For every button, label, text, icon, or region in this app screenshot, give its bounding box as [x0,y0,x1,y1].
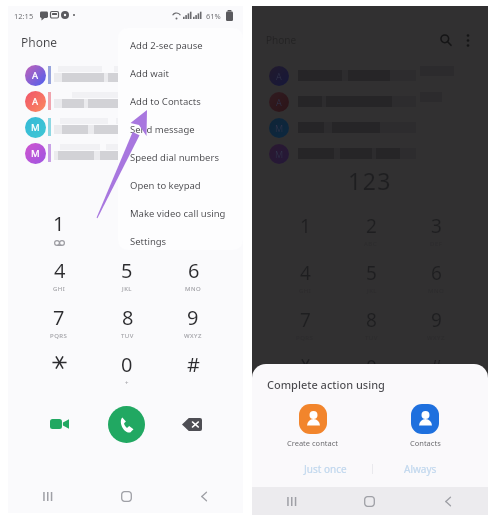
staticText: 9 [187,304,199,331]
button[interactable]: 3 [163,210,223,256]
button[interactable]: Always [374,457,466,481]
staticText: Contacts [410,438,441,448]
staticText: 0 [366,354,377,380]
staticText: + [370,381,374,389]
button[interactable]: 5 [97,257,157,303]
button[interactable]: Send message [118,115,243,143]
button[interactable]: 1 [29,210,89,256]
staticText: 6 [431,260,442,286]
staticText: WXYZ [184,332,202,340]
button[interactable]: Just once [277,457,373,481]
button[interactable]: Recents [252,487,330,515]
button[interactable] [275,354,335,400]
staticText: Complete action using [267,377,385,392]
staticText: 3 [431,213,442,239]
staticText: A [32,95,39,108]
staticText: + [125,379,129,387]
button[interactable]: Search [436,30,456,50]
staticText: TUV [121,332,134,340]
button[interactable]: 7 [29,304,89,350]
button[interactable]: M [252,116,488,142]
button[interactable]: 9 [163,304,223,350]
button[interactable]: Speed dial numbers [118,143,243,171]
staticText: 7 [300,307,311,333]
staticText: A [276,70,282,82]
button[interactable]: M [8,142,243,168]
button[interactable]: 8 [97,304,157,350]
button[interactable]: Add to Contacts [118,87,243,115]
staticText: 4 [300,260,311,286]
button[interactable]: 4 [29,257,89,303]
button[interactable]: Add 2-sec pause [118,31,243,59]
button[interactable]: 2 [97,210,157,256]
staticText: A [276,96,282,108]
staticText: Phone [266,33,297,47]
staticText: 61% [206,11,221,21]
staticText: 0 [121,351,133,378]
button[interactable]: Open to keypad [118,171,243,199]
button[interactable]: Create contact [265,404,361,448]
button[interactable]: More options [458,30,478,50]
button[interactable]: A [252,90,488,116]
staticText: ABC [120,238,134,246]
button[interactable]: Backspace [172,404,212,444]
staticText: A [32,69,39,82]
staticText: 123 [348,165,392,196]
button[interactable]: 0 [341,354,401,400]
staticText: Add to Contacts [130,95,201,108]
button[interactable]: Contacts [377,404,473,448]
staticText: PQRS [50,332,68,340]
button[interactable]: Make video call using [118,199,243,227]
button[interactable]: M [8,116,243,142]
button[interactable]: A [252,64,488,90]
staticText: Send message [130,123,195,136]
button[interactable]: Back [409,487,488,515]
staticText: Make video call using [130,207,226,220]
staticText: M [275,122,284,134]
staticText: 5 [121,257,133,284]
button[interactable]: Home [87,479,165,513]
staticText: Open to keypad [130,179,201,192]
button[interactable]: Add wait [118,59,243,87]
button[interactable]: Recents [8,479,87,513]
staticText: 1 [53,210,65,237]
button[interactable]: A [8,90,243,116]
button[interactable]: A [8,64,243,90]
staticText: 6 [188,257,200,284]
button[interactable]: 6 [163,257,223,303]
button[interactable]: Video call [39,404,79,444]
button[interactable]: Settings [118,227,243,250]
button[interactable]: Call [108,406,145,443]
button[interactable]: # [163,351,223,397]
staticText: Just once [304,462,347,476]
staticText: 1 [300,213,311,239]
staticText: Phone [21,34,58,50]
button[interactable]: Home [330,487,409,515]
button[interactable]: Back [165,479,243,513]
staticText: 8 [122,304,134,331]
button[interactable]: # [406,354,466,400]
staticText: # [187,351,200,378]
staticText: 8 [366,307,377,333]
button[interactable]: 0 [97,351,157,397]
button[interactable]: M [252,142,488,168]
button[interactable] [29,351,89,397]
staticText: Add 2-sec pause [130,39,203,52]
staticText: # [430,354,443,380]
